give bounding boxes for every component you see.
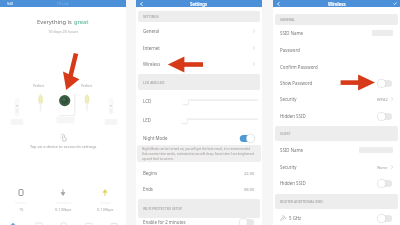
staticText: Internet bbox=[143, 45, 160, 51]
button[interactable]: Upload bbox=[84, 189, 126, 212]
staticText: Hidden SSID bbox=[280, 180, 306, 186]
button[interactable]: Devices bbox=[0, 189, 42, 212]
staticText: Night Mode can be turned on, you will ge… bbox=[142, 147, 256, 161]
staticText: GENERAL bbox=[280, 17, 295, 22]
staticText: 9:41 bbox=[7, 1, 14, 6]
button[interactable] bbox=[0, 88, 126, 130]
button[interactable]: General bbox=[136, 23, 262, 39]
staticText: Wireless bbox=[328, 1, 346, 7]
staticText: WPA2 bbox=[377, 97, 388, 102]
button[interactable]: Internet bbox=[136, 40, 262, 56]
button[interactable]: Hidden SSID bbox=[273, 108, 400, 124]
button[interactable]: Home bbox=[0, 216, 26, 225]
button[interactable]: Hidden SSID bbox=[273, 175, 400, 191]
staticText: 5 GHz bbox=[289, 215, 302, 221]
button[interactable]: Wireless bbox=[136, 56, 262, 72]
button[interactable]: 5 GHz bbox=[273, 210, 400, 225]
staticText: Ends bbox=[143, 186, 153, 192]
staticText: great bbox=[74, 18, 89, 26]
staticText: Confirm Password bbox=[280, 64, 318, 70]
button[interactable]: Back bbox=[136, 0, 147, 7]
button[interactable]: Password bbox=[273, 42, 400, 58]
button[interactable]: Confirm bbox=[389, 0, 400, 7]
staticText: ROUTER ADDITIONAL SSID bbox=[280, 199, 323, 204]
staticText: TP-Link bbox=[57, 1, 69, 6]
staticText: General bbox=[143, 28, 160, 34]
staticText: 10 days 20 hours bbox=[48, 29, 79, 34]
staticText: Security bbox=[280, 96, 297, 102]
staticText: Show Password bbox=[280, 80, 313, 86]
staticText: Hidden SSID bbox=[280, 113, 306, 119]
staticText: LED bbox=[143, 117, 151, 123]
button[interactable]: More bbox=[101, 216, 126, 225]
button[interactable]: Enable for 2 minutes bbox=[136, 214, 262, 225]
staticText: Download bbox=[56, 201, 71, 205]
staticText: 0.1 Mbps bbox=[97, 207, 114, 212]
staticText: GUEST bbox=[280, 131, 291, 136]
button[interactable]: Devices bbox=[26, 216, 51, 225]
staticText: Night Mode bbox=[143, 135, 168, 141]
staticText: Perfect bbox=[81, 83, 92, 87]
button[interactable]: Begins bbox=[136, 165, 262, 181]
staticText: 22:00 bbox=[244, 171, 255, 176]
staticText: 08:00 bbox=[244, 187, 255, 192]
button[interactable] bbox=[0, 88, 126, 130]
button[interactable]: Show Password bbox=[273, 75, 400, 91]
staticText: Devices bbox=[15, 201, 27, 205]
staticText: Enable for 2 minutes bbox=[143, 219, 186, 225]
staticText: SSID Name bbox=[280, 147, 304, 153]
button[interactable] bbox=[0, 88, 126, 130]
staticText: LCD bbox=[143, 98, 152, 104]
button[interactable]: Night Mode bbox=[136, 130, 262, 146]
staticText: None bbox=[377, 165, 388, 170]
button[interactable]: Messages bbox=[76, 216, 101, 225]
staticText: LCD AND LED bbox=[143, 80, 165, 85]
button[interactable]: Security bbox=[273, 159, 400, 175]
staticText: 0.1 Mbps bbox=[55, 207, 72, 212]
staticText: Everything is bbox=[37, 18, 74, 26]
button[interactable]: Network bbox=[51, 216, 76, 225]
button[interactable]: SSID Name bbox=[273, 142, 400, 158]
button[interactable]: Security bbox=[273, 91, 400, 107]
staticText: Begins bbox=[143, 170, 157, 176]
staticText: WI-FI PROTECTED SETUP bbox=[143, 206, 183, 211]
button[interactable]: LED bbox=[136, 112, 262, 128]
staticText: Upload bbox=[100, 201, 111, 205]
button[interactable] bbox=[0, 88, 126, 130]
staticText: 15 bbox=[19, 207, 24, 212]
button[interactable] bbox=[0, 88, 126, 130]
staticText: Wireless bbox=[143, 61, 161, 67]
staticText: Tap on a device to access its settings bbox=[30, 144, 97, 149]
staticText: SSID Name bbox=[280, 30, 304, 36]
button[interactable]: Back bbox=[273, 0, 284, 7]
button[interactable]: SSID Name bbox=[273, 25, 400, 41]
button[interactable]: Download bbox=[42, 189, 84, 212]
staticText: Password bbox=[280, 47, 300, 53]
staticText: Perfect bbox=[33, 83, 44, 87]
button[interactable]: Ends bbox=[136, 181, 262, 197]
staticText: SETTINGS bbox=[143, 14, 159, 19]
button[interactable]: Confirm Password bbox=[273, 59, 400, 75]
button[interactable]: LCD bbox=[136, 93, 262, 109]
staticText: Settings bbox=[190, 1, 208, 7]
staticText: Security bbox=[280, 164, 297, 170]
